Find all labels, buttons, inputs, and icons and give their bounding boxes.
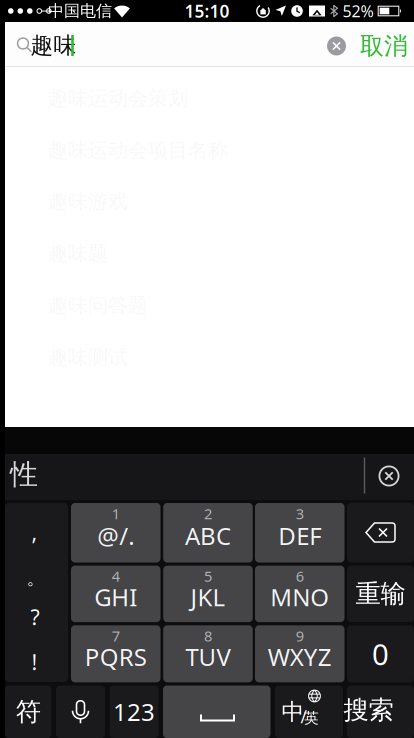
staticText: 搜索: [343, 694, 393, 725]
staticText: DEF: [278, 520, 321, 552]
staticText: 重输: [355, 578, 405, 609]
staticText: 。: [26, 566, 45, 589]
staticText: 7: [112, 626, 120, 646]
button[interactable]: Switch language: [275, 685, 343, 738]
button[interactable]: 0: [347, 625, 414, 682]
staticText: 2: [204, 504, 212, 523]
staticText: ?: [30, 603, 39, 631]
button[interactable]: 4: [71, 566, 160, 622]
staticText: JKL: [190, 581, 225, 613]
staticText: GHI: [94, 581, 137, 613]
button[interactable]: 6: [255, 566, 344, 622]
button[interactable]: 符: [5, 685, 51, 738]
button[interactable]: 搜索: [347, 685, 414, 738]
staticText: 6: [296, 566, 304, 586]
staticText: 52%: [342, 0, 373, 22]
button[interactable]: Clear text: [327, 36, 346, 55]
staticText: 3: [296, 504, 304, 523]
staticText: 5: [204, 566, 212, 586]
staticText: @/.: [97, 520, 134, 552]
button[interactable]: Punctuation: [5, 503, 68, 682]
staticText: 4: [112, 566, 120, 586]
staticText: ,: [31, 518, 37, 546]
button[interactable]: 8: [163, 625, 253, 682]
staticText: 9: [296, 626, 304, 646]
staticText: 0: [372, 634, 389, 673]
staticText: TUV: [185, 641, 230, 673]
staticText: 趣味: [30, 32, 76, 59]
staticText: 取消: [360, 31, 408, 61]
button[interactable]: 3: [255, 503, 344, 562]
staticText: MNO: [270, 581, 329, 613]
button[interactable]: 1: [71, 503, 160, 562]
button[interactable]: 123: [109, 685, 158, 738]
staticText: 15:10: [184, 0, 229, 22]
button[interactable]: 重输: [347, 566, 414, 622]
button[interactable]: 7: [71, 625, 160, 682]
button[interactable]: Dismiss candidates: [378, 465, 399, 486]
staticText: /: [300, 705, 306, 728]
button[interactable]: 取消: [356, 23, 412, 68]
staticText: !: [31, 648, 37, 676]
button[interactable]: Dictation: [56, 685, 105, 738]
button[interactable]: Space: [163, 685, 270, 738]
staticText: ABC: [185, 520, 231, 552]
staticText: 1: [112, 504, 120, 523]
button[interactable]: 5: [163, 566, 253, 622]
button[interactable]: Delete: [347, 503, 414, 562]
staticText: 中国电信: [48, 1, 112, 21]
staticText: PQRS: [85, 641, 147, 673]
staticText: 性: [10, 457, 38, 492]
staticText: 符: [16, 696, 41, 727]
staticText: 123: [113, 696, 155, 728]
staticText: 英: [304, 709, 319, 727]
staticText: 中: [281, 698, 304, 726]
staticText: WXYZ: [268, 641, 332, 673]
button[interactable]: 2: [163, 503, 253, 562]
staticText: 8: [204, 626, 212, 646]
button[interactable]: 9: [255, 625, 344, 682]
